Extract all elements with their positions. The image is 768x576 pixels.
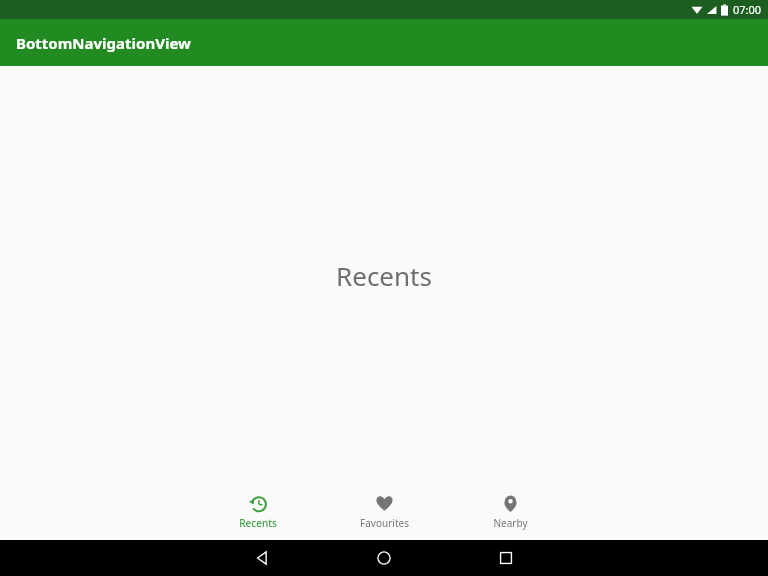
staticText: BottomNavigationView — [16, 33, 191, 53]
button[interactable]: Home — [323, 540, 445, 576]
staticText: 07:00 — [733, 2, 762, 17]
staticText: Recents — [336, 258, 432, 293]
staticText: Favourites — [360, 516, 409, 530]
button[interactable]: Recents — [195, 484, 321, 540]
button[interactable]: Back — [201, 540, 323, 576]
staticText: Nearby — [493, 516, 528, 530]
button[interactable]: Nearby — [447, 484, 573, 540]
staticText: Recents — [239, 516, 277, 530]
button[interactable]: Recent apps — [445, 540, 567, 576]
button[interactable]: Favourites — [321, 484, 447, 540]
